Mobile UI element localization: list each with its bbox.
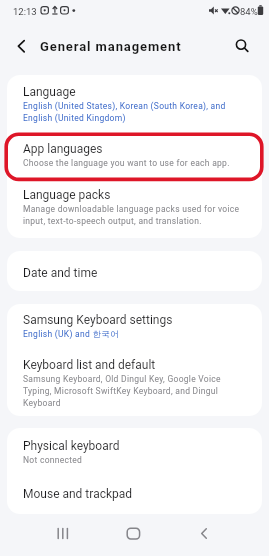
button[interactable]: Language packs	[7, 180, 262, 238]
staticText: General management	[40, 39, 182, 54]
button[interactable]: App languages	[7, 134, 262, 180]
staticText: Language	[23, 85, 76, 99]
staticText: Date and time	[23, 266, 98, 280]
staticText: English (United States), Korean (South K…	[23, 99, 226, 123]
button[interactable]: Mouse and trackpad	[7, 471, 262, 514]
staticText: Manage downloadable language packs used …	[23, 202, 240, 226]
staticText: 84%	[240, 6, 258, 17]
button[interactable]: Samsung Keyboard settings	[7, 304, 262, 350]
staticText: Keyboard list and default	[23, 358, 156, 372]
staticText: English (UK) and 한국어	[23, 327, 119, 340]
staticText: Samsung Keyboard settings	[23, 313, 173, 327]
button[interactable]	[188, 517, 224, 553]
staticText: Samsung Keyboard, Old Dingul Key, Google…	[23, 372, 221, 408]
staticText: Mouse and trackpad	[23, 487, 133, 501]
staticText: Language packs	[23, 188, 111, 202]
staticText: 12:13	[13, 6, 37, 17]
button[interactable]: Language	[7, 75, 262, 134]
button[interactable]	[45, 517, 81, 553]
button[interactable]	[117, 517, 153, 553]
button[interactable]	[0, 22, 40, 70]
staticText: Not connected	[23, 453, 83, 465]
staticText: Physical keyboard	[23, 439, 120, 453]
button[interactable]: Physical keyboard	[7, 428, 262, 471]
staticText: App languages	[23, 142, 103, 156]
button[interactable]	[225, 22, 269, 70]
button[interactable]: Keyboard list and default	[7, 350, 262, 416]
staticText: Choose the language you want to use for …	[23, 156, 230, 168]
button[interactable]: Date and time	[7, 251, 262, 291]
